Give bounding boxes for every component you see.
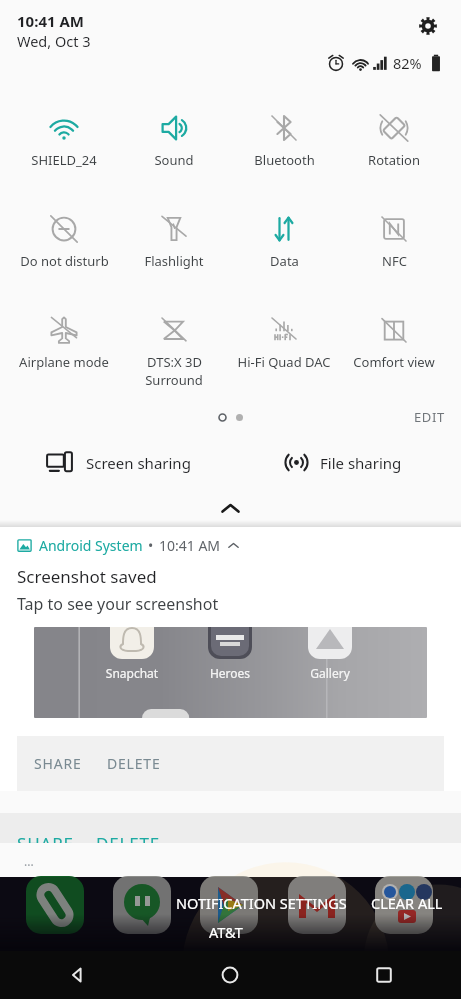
staticText: Tap to see your screenshot <box>17 593 219 615</box>
button[interactable]: DTS:X 3D <box>119 297 229 398</box>
staticText: DTS:X 3D <box>147 353 202 371</box>
staticText: Android System <box>39 536 143 555</box>
staticText: 10:41 AM <box>159 536 221 555</box>
button[interactable]: Android System <box>0 527 461 791</box>
staticText: Sound <box>154 151 194 169</box>
button[interactable]: NOTIFICATION SETTINGS <box>176 893 347 913</box>
staticText: SHARE <box>17 832 74 855</box>
staticText: Gallery <box>290 665 370 681</box>
staticText: Data <box>270 252 299 270</box>
button[interactable]: Screen sharing <box>0 449 230 476</box>
button[interactable]: Airplane mode <box>9 297 119 398</box>
staticText: Wed, Oct 3 <box>17 31 91 51</box>
staticText: CLEAR ALL <box>371 893 443 913</box>
staticText: ... <box>24 853 34 869</box>
button[interactable]: SHARE <box>0 813 461 843</box>
staticText: AT&T <box>209 922 243 942</box>
button[interactable]: DELETE <box>99 744 169 783</box>
button[interactable]: CLEAR ALL <box>371 893 443 913</box>
staticText: Screenshot saved <box>17 565 157 588</box>
button[interactable]: SHIELD_24 <box>9 95 119 196</box>
staticText: 82% <box>393 53 422 73</box>
button[interactable]: Flashlight <box>119 196 229 297</box>
staticText: Comfort view <box>353 353 435 371</box>
staticText: DELETE <box>96 832 160 855</box>
button[interactable]: Do not disturb <box>9 196 119 297</box>
staticText: NOTIFICATION SETTINGS <box>176 893 347 913</box>
staticText: Surround <box>145 371 203 389</box>
staticText: 10:41 AM <box>17 11 84 31</box>
button[interactable]: Settings <box>412 10 444 42</box>
staticText: Heroes <box>190 665 270 681</box>
button[interactable]: NFC <box>339 196 449 297</box>
staticText: Airplane mode <box>19 353 109 371</box>
staticText: File sharing <box>320 453 402 473</box>
staticText: Rotation <box>368 151 420 169</box>
staticText: Hi-Fi Quad DAC <box>237 353 331 371</box>
staticText: Screen sharing <box>86 453 191 473</box>
button[interactable]: Collapse <box>0 488 461 527</box>
button[interactable]: Recents <box>307 951 461 999</box>
button[interactable]: Data <box>229 196 339 297</box>
button[interactable]: Comfort view <box>339 297 449 398</box>
button[interactable]: Back <box>0 951 153 999</box>
button[interactable]: Sound <box>119 95 229 196</box>
staticText: Snapchat <box>92 665 172 681</box>
button[interactable]: SHARE <box>17 744 99 783</box>
button[interactable]: Hi-Fi Quad DAC <box>229 297 339 398</box>
staticText: Flashlight <box>144 252 204 270</box>
button[interactable]: Rotation <box>339 95 449 196</box>
button[interactable]: Home <box>153 951 307 999</box>
staticText: Do not disturb <box>20 252 109 270</box>
button[interactable]: EDIT <box>414 408 445 426</box>
button[interactable]: Bluetooth <box>229 95 339 196</box>
staticText: EDIT <box>414 408 445 426</box>
staticText: DELETE <box>107 754 161 773</box>
staticText: SHARE <box>34 754 82 773</box>
staticText: Bluetooth <box>254 151 315 169</box>
staticText: SHIELD_24 <box>31 151 97 169</box>
staticText: NFC <box>382 252 407 270</box>
button[interactable]: File sharing <box>230 449 461 476</box>
staticText: • <box>148 536 154 555</box>
